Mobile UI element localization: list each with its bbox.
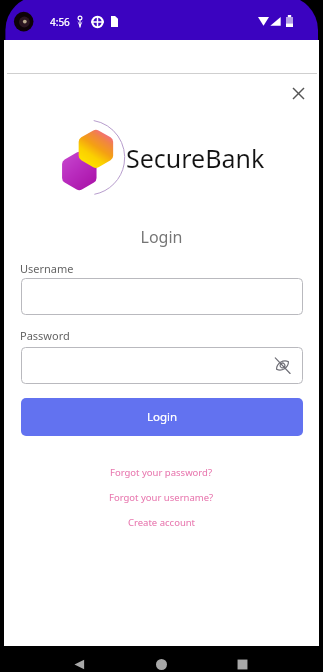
button[interactable]: Create account — [4, 514, 319, 530]
button[interactable]: Login — [21, 398, 303, 436]
button[interactable]: Forgot your password? — [4, 464, 319, 480]
button[interactable]: Show password — [270, 353, 295, 378]
staticText: Forgot your password? — [110, 466, 213, 479]
staticText: Login — [147, 409, 178, 425]
staticText: 4:56 — [50, 15, 70, 29]
button[interactable]: Home — [150, 653, 172, 672]
staticText: Forgot your username? — [109, 491, 214, 504]
staticText: Username — [20, 261, 74, 276]
button[interactable]: Close — [285, 80, 312, 107]
button[interactable]: Forgot your username? — [4, 489, 319, 505]
staticText: Login — [4, 226, 319, 248]
button[interactable] — [21, 347, 303, 384]
staticText: Create account — [128, 516, 196, 529]
button[interactable]: Recents — [231, 653, 253, 672]
staticText: Password — [20, 328, 70, 343]
button[interactable] — [21, 278, 303, 315]
button[interactable]: Back — [68, 653, 90, 672]
staticText: SecureBank — [126, 141, 265, 175]
